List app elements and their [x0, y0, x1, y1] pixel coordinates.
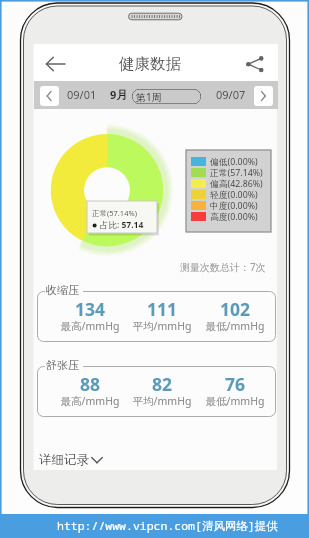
button[interactable]: Share	[241, 52, 269, 76]
staticText: 舒张压	[46, 358, 79, 372]
button[interactable]: Previous week	[40, 86, 59, 106]
staticText: 平均/mmHg	[122, 394, 202, 408]
staticText: 正常(57.14%)	[92, 208, 137, 218]
staticText: 最高/mmHg	[50, 319, 130, 333]
button[interactable]: Next week	[254, 86, 273, 106]
staticText: 占比: 57.14	[100, 219, 144, 231]
staticText: 偏低(0.00%)	[210, 156, 258, 167]
staticText: 轻度(0.00%)	[210, 189, 258, 200]
staticText: 第1周	[136, 90, 162, 104]
button[interactable]: Back	[41, 52, 70, 76]
staticText: 134	[50, 297, 130, 321]
staticText: 详细记录	[39, 452, 89, 468]
staticText: 平均/mmHg	[122, 319, 202, 333]
staticText: 最低/mmHg	[195, 394, 275, 408]
staticText: 健康数据	[119, 54, 181, 74]
button[interactable]: 舒张压	[37, 366, 276, 417]
staticText: 偏高(42.86%)	[210, 178, 263, 189]
staticText: 中度(0.00%)	[210, 200, 258, 211]
staticText: 正常(57.14%)	[210, 167, 263, 178]
staticText: 9月	[110, 87, 128, 102]
staticText: 82	[122, 372, 202, 396]
staticText: 88	[50, 372, 130, 396]
staticText: 09/01	[67, 87, 97, 102]
staticText: 111	[122, 297, 202, 321]
staticText: 最低/mmHg	[195, 319, 275, 333]
staticText: http://www.vipcn.com[清风网络]提供	[57, 518, 278, 534]
staticText: 102	[195, 297, 275, 321]
staticText: 收缩压	[46, 283, 79, 297]
staticText: 最高/mmHg	[50, 394, 130, 408]
button[interactable]: 详细记录	[39, 451, 105, 468]
staticText: 09/07	[216, 87, 246, 102]
button[interactable]: 收缩压	[37, 291, 276, 342]
staticText: 76	[195, 372, 275, 396]
staticText: 测量次数总计：7次	[180, 260, 266, 274]
staticText: 高度(0.00%)	[210, 211, 258, 222]
button[interactable]: 第1周	[132, 89, 201, 104]
